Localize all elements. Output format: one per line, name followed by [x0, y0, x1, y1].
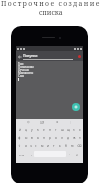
button[interactable]: ,: [28, 150, 34, 158]
staticText: ☺: [27, 121, 30, 124]
button[interactable]: ?123: [16, 150, 28, 158]
staticText: списка: [39, 8, 63, 17]
staticText: в: [31, 136, 33, 140]
staticText: ⋮: [69, 121, 72, 124]
staticText: г: [55, 128, 57, 132]
button[interactable]: с: [33, 142, 39, 150]
button[interactable]: ф: [16, 134, 23, 142]
button[interactable]: м: [39, 142, 45, 150]
staticText: ⇧: [18, 144, 21, 148]
staticText: .: [69, 152, 70, 156]
button[interactable]: Back: [16, 53, 23, 60]
staticText: ц: [25, 128, 27, 132]
staticText: з: [73, 128, 75, 132]
staticText: н: [49, 128, 51, 132]
button[interactable]: Сыр: [18, 74, 83, 77]
button[interactable]: к: [35, 126, 41, 134]
button[interactable]: о: [53, 134, 59, 142]
staticText: й: [19, 128, 21, 132]
staticText: а: [37, 136, 39, 140]
button[interactable]: ь: [57, 142, 63, 150]
staticText: Построчное создание: [1, 0, 101, 8]
button[interactable]: Backspace: [75, 142, 83, 150]
button[interactable]: ю: [69, 142, 75, 150]
staticText: ю: [71, 144, 74, 148]
button[interactable]: г: [53, 126, 59, 134]
staticText: л: [61, 136, 63, 140]
button[interactable]: п: [41, 134, 47, 142]
staticText: ?123: [19, 153, 25, 156]
staticText: Огурцы: [18, 68, 30, 71]
staticText: ы: [25, 136, 28, 140]
staticText: ж: [73, 136, 76, 140]
button[interactable]: л: [59, 134, 65, 142]
staticText: ,: [31, 152, 32, 156]
staticText: Покупки: [23, 53, 38, 58]
staticText: GIF: [40, 121, 45, 125]
button[interactable]: й: [16, 126, 23, 134]
staticText: к: [37, 128, 39, 132]
staticText: ф: [18, 136, 21, 140]
button[interactable]: в: [29, 134, 35, 142]
button[interactable]: э: [77, 134, 83, 142]
button[interactable]: и: [45, 142, 51, 150]
button[interactable]: з: [71, 126, 77, 134]
button[interactable]: ☺: [27, 121, 30, 124]
staticText: о: [55, 136, 57, 140]
staticText: Макароны: [18, 71, 34, 74]
staticText: я: [25, 144, 27, 148]
staticText: э: [79, 136, 81, 140]
button[interactable]: Add item: [72, 103, 80, 111]
staticText: п: [43, 136, 45, 140]
button[interactable]: Shift: [16, 142, 23, 150]
staticText: ↵: [76, 153, 79, 156]
button[interactable]: ⋮: [69, 121, 72, 124]
staticText: д: [67, 136, 69, 140]
button[interactable]: Помидоры: [18, 65, 83, 68]
staticText: Сыр: [18, 74, 25, 77]
button[interactable]: ы: [23, 134, 29, 142]
button[interactable]: я: [23, 142, 28, 150]
staticText: с: [35, 144, 37, 148]
button[interactable]: а: [35, 134, 41, 142]
button[interactable]: Enter: [72, 150, 83, 158]
staticText: и: [47, 144, 49, 148]
staticText: ь: [59, 144, 61, 148]
button[interactable]: ш: [59, 126, 65, 134]
staticText: м: [41, 144, 44, 148]
button[interactable]: н: [47, 126, 53, 134]
staticText: б: [65, 144, 67, 148]
button[interactable]: ж: [71, 134, 77, 142]
button[interactable]: т: [51, 142, 57, 150]
staticText: х: [79, 128, 81, 132]
button[interactable]: у: [29, 126, 35, 134]
button[interactable]: р: [47, 134, 53, 142]
staticText: ш: [61, 128, 64, 132]
staticText: ч: [30, 144, 32, 148]
staticText: Три: [18, 62, 24, 65]
staticText: у: [31, 128, 33, 132]
button[interactable]: д: [65, 134, 71, 142]
button[interactable]: GIF: [40, 121, 45, 125]
button[interactable]: ч: [28, 142, 33, 150]
button[interactable]: Макароны: [18, 71, 83, 74]
staticText: щ: [67, 128, 70, 132]
staticText: ⌫: [77, 144, 82, 148]
button[interactable]: Три: [18, 62, 83, 65]
staticText: р: [49, 136, 51, 140]
button[interactable]: ц: [23, 126, 29, 134]
button[interactable]: б: [63, 142, 69, 150]
staticText: ⚙: [56, 121, 59, 124]
button[interactable]: х: [77, 126, 83, 134]
button[interactable]: Delete list: [76, 53, 83, 60]
button[interactable]: ⚙: [56, 121, 59, 124]
button[interactable]: щ: [65, 126, 71, 134]
staticText: Помидоры: [18, 65, 34, 68]
button[interactable]: е: [41, 126, 47, 134]
staticText: е: [43, 128, 45, 132]
button[interactable]: Огурцы: [18, 68, 83, 71]
staticText: т: [53, 144, 55, 148]
